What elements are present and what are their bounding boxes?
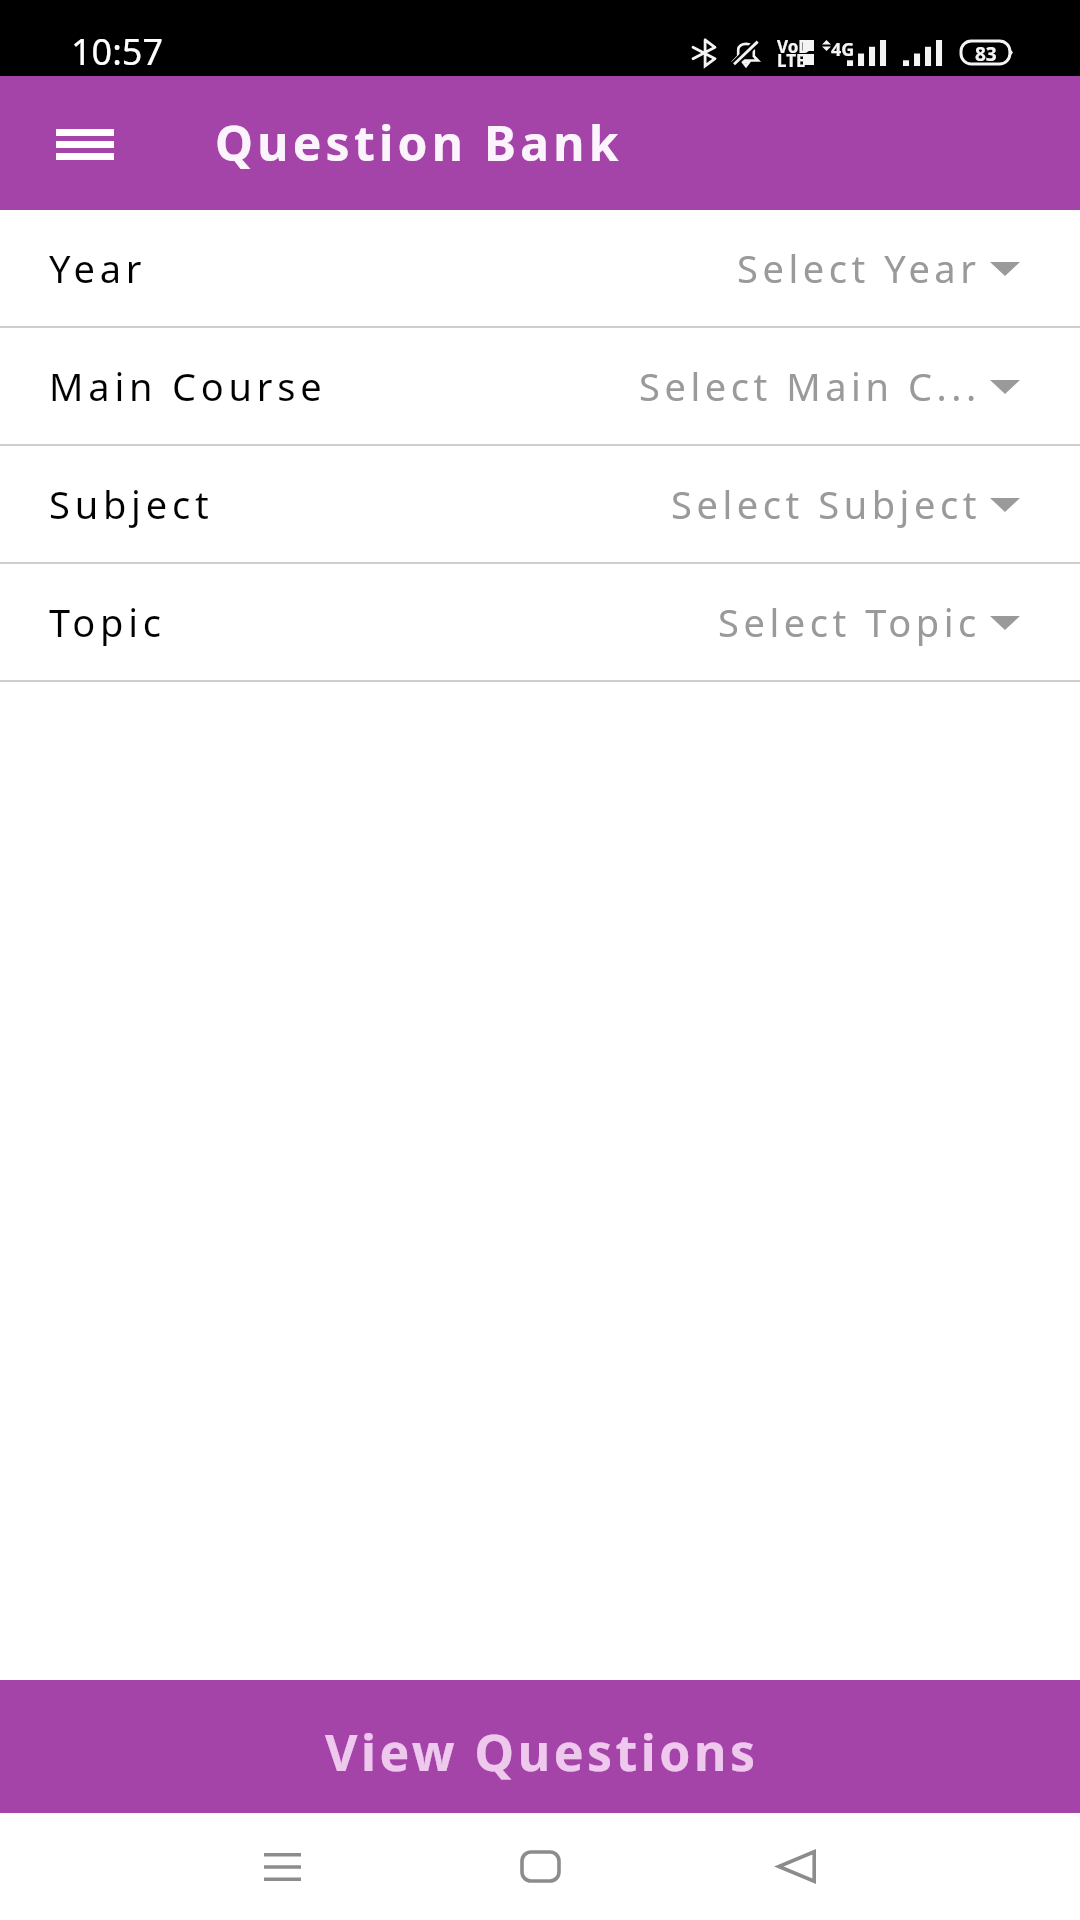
staticText: Select Main C... <box>639 360 981 412</box>
staticText: 83 <box>975 41 997 64</box>
staticText: Select Subject <box>671 478 981 530</box>
staticText: View Questions <box>325 1718 759 1786</box>
staticText: Select Year <box>737 242 981 294</box>
button[interactable]: Recent apps <box>232 1829 332 1904</box>
button[interactable]: Year <box>0 210 1080 328</box>
button[interactable]: View Questions <box>0 1680 1080 1813</box>
staticText: Question Bank <box>215 110 623 175</box>
staticText: Topic <box>49 596 166 648</box>
button[interactable]: Topic <box>0 564 1080 682</box>
button[interactable]: Main Course <box>0 328 1080 446</box>
button[interactable]: Home <box>490 1829 590 1904</box>
staticText: LTE <box>777 49 806 72</box>
button[interactable]: Back <box>746 1829 846 1904</box>
staticText: 10:57 <box>71 27 164 76</box>
staticText: Subject <box>49 478 214 530</box>
staticText: VoD <box>777 35 811 58</box>
button[interactable]: Subject <box>0 446 1080 564</box>
staticText: Select Topic <box>718 596 981 648</box>
staticText: Main Course <box>49 360 327 412</box>
staticText: 4G <box>831 37 855 62</box>
button[interactable]: Open navigation menu <box>14 87 156 201</box>
staticText: Year <box>49 242 147 294</box>
